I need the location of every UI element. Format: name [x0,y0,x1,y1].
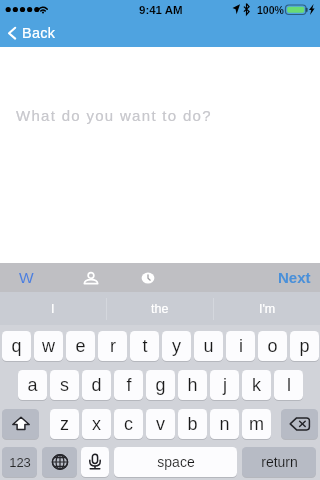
button[interactable]: f [114,370,143,400]
button[interactable]: Backspace [281,409,318,439]
staticText: p [299,336,310,356]
button[interactable]: l [274,370,303,400]
button[interactable]: Back [0,20,66,47]
staticText: t [142,336,148,356]
button[interactable]: i [226,331,255,361]
staticText: I'm [259,302,276,316]
staticText: h [187,375,198,395]
staticText: q [11,336,22,356]
button[interactable]: p [290,331,319,361]
staticText: w [42,336,55,356]
staticText: g [155,375,166,395]
button[interactable]: w [34,331,63,361]
button[interactable]: v [146,409,175,439]
button[interactable]: u [194,331,223,361]
button[interactable]: return [242,447,316,477]
staticText: W [19,269,34,286]
staticText: s [60,375,69,395]
staticText: u [203,336,214,356]
staticText: i [239,336,243,356]
button[interactable]: I [0,292,106,325]
button[interactable]: q [2,331,31,361]
staticText: Next [278,269,311,286]
button[interactable]: k [242,370,271,400]
staticText: Back [22,25,56,41]
staticText: the [151,302,169,316]
staticText: l [287,375,291,395]
button[interactable]: m [242,409,271,439]
button[interactable]: n [210,409,239,439]
staticText: b [187,414,198,434]
staticText: I [51,302,55,316]
button[interactable]: Recent [125,263,170,292]
button[interactable]: Switch keyboard [42,447,77,477]
button[interactable]: 123 [2,447,37,477]
staticText: d [91,375,102,395]
staticText: y [172,336,181,356]
staticText: z [60,414,69,434]
button[interactable]: c [114,409,143,439]
button[interactable]: b [178,409,207,439]
staticText: n [219,414,230,434]
button[interactable]: space [114,447,237,477]
button[interactable]: W [4,263,49,292]
staticText: v [156,414,165,434]
staticText: 100% [257,4,284,16]
button[interactable]: Next [268,263,316,292]
button[interactable]: I'm [214,292,320,325]
button[interactable]: x [82,409,111,439]
staticText: r [110,336,116,356]
button[interactable]: Dictate [81,447,109,477]
staticText: c [124,414,133,434]
button[interactable]: o [258,331,287,361]
button[interactable]: t [130,331,159,361]
staticText: m [249,414,264,434]
button[interactable]: a [18,370,47,400]
button[interactable]: g [146,370,175,400]
staticText: What do you want to do? [16,107,212,124]
button[interactable]: r [98,331,127,361]
button[interactable]: Shift [2,409,39,439]
button[interactable]: h [178,370,207,400]
staticText: 123 [9,455,31,470]
staticText: e [75,336,86,356]
staticText: x [92,414,101,434]
button[interactable]: e [66,331,95,361]
staticText: space [157,454,195,470]
button[interactable]: the [107,292,213,325]
staticText: o [267,336,278,356]
staticText: j [223,375,227,395]
button[interactable]: s [50,370,79,400]
staticText: f [126,375,132,395]
staticText: return [261,454,298,470]
button[interactable]: d [82,370,111,400]
button[interactable]: Contacts [68,263,113,292]
staticText: k [252,375,261,395]
staticText: a [27,375,38,395]
button[interactable]: z [50,409,79,439]
staticText: 9:41 AM [139,4,183,17]
button[interactable]: y [162,331,191,361]
button[interactable]: j [210,370,239,400]
